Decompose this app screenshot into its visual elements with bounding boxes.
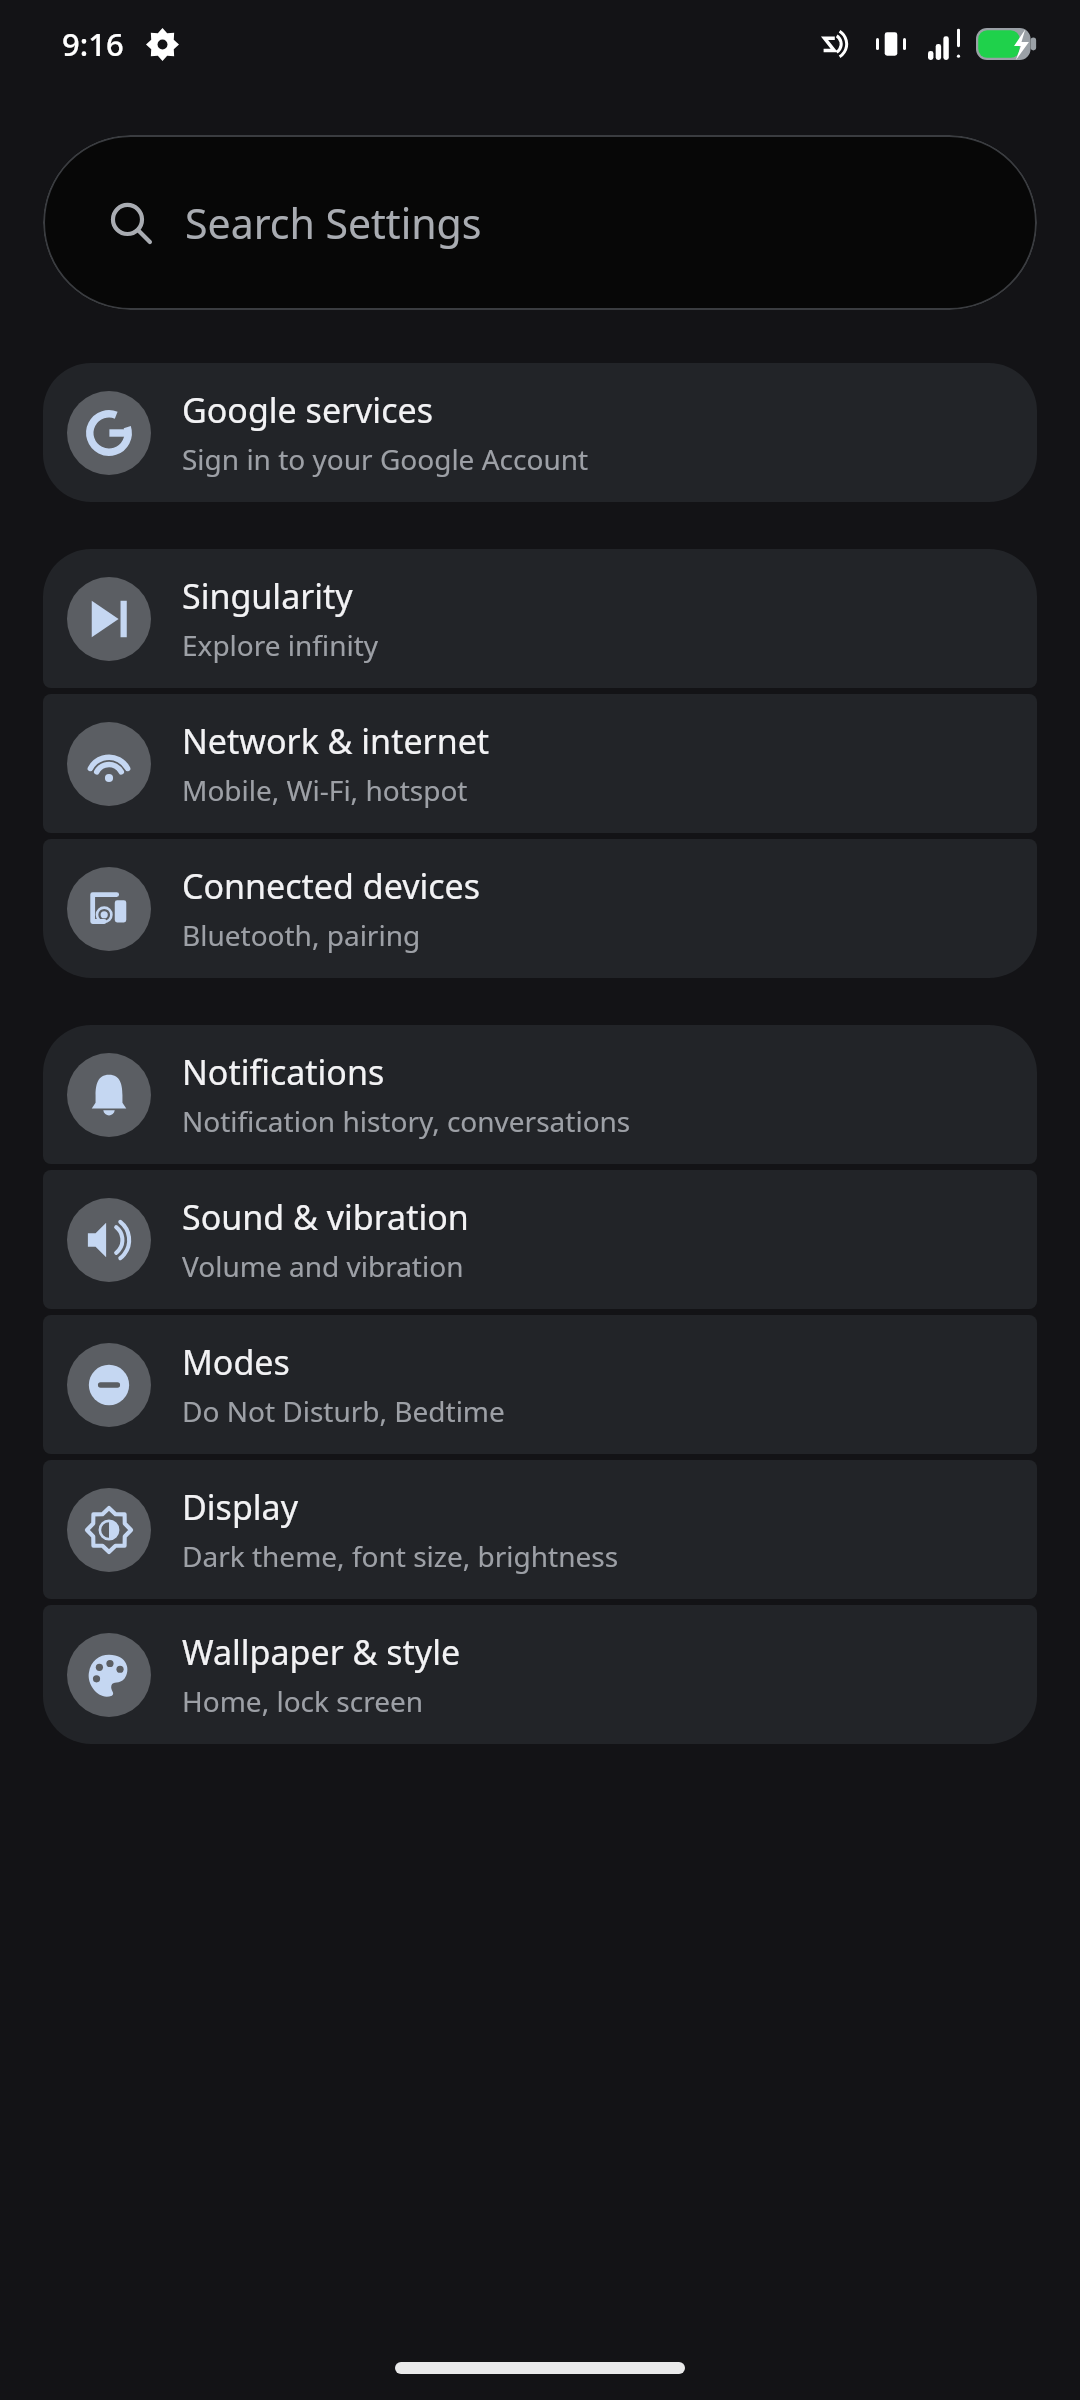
staticText: Volume and vibration xyxy=(182,1247,464,1285)
staticText: Connected devices xyxy=(182,863,481,909)
staticText: Notifications xyxy=(182,1049,385,1095)
staticText: Singularity xyxy=(182,573,353,619)
button[interactable]: Sound & vibration xyxy=(43,1170,1037,1309)
staticText: Wallpaper & style xyxy=(182,1629,461,1675)
staticText: Dark theme, font size, brightness xyxy=(182,1537,619,1575)
button[interactable]: Google services xyxy=(43,363,1037,502)
staticText: Bluetooth, pairing xyxy=(182,916,421,954)
staticText: Search Settings xyxy=(185,195,482,251)
button[interactable]: Wallpaper & style xyxy=(43,1605,1037,1744)
button[interactable]: Connected devices xyxy=(43,839,1037,978)
staticText: Display xyxy=(182,1484,298,1530)
button[interactable]: Notifications xyxy=(43,1025,1037,1164)
button[interactable]: Display xyxy=(43,1460,1037,1599)
staticText: Network & internet xyxy=(182,718,490,764)
staticText: Explore infinity xyxy=(182,626,379,664)
button[interactable]: Search Settings xyxy=(43,135,1037,310)
button[interactable]: Modes xyxy=(43,1315,1037,1454)
staticText: Home, lock screen xyxy=(182,1682,424,1720)
button[interactable]: Network & internet xyxy=(43,694,1037,833)
staticText: Sign in to your Google Account xyxy=(182,440,589,478)
staticText: Do Not Disturb, Bedtime xyxy=(182,1392,505,1430)
staticText: Sound & vibration xyxy=(182,1194,469,1240)
button[interactable]: Singularity xyxy=(43,549,1037,688)
staticText: 9:16 xyxy=(62,23,124,65)
staticText: Mobile, Wi-Fi, hotspot xyxy=(182,771,468,809)
staticText: Notification history, conversations xyxy=(182,1102,631,1140)
staticText: Google services xyxy=(182,387,433,433)
staticText: Modes xyxy=(182,1339,290,1385)
